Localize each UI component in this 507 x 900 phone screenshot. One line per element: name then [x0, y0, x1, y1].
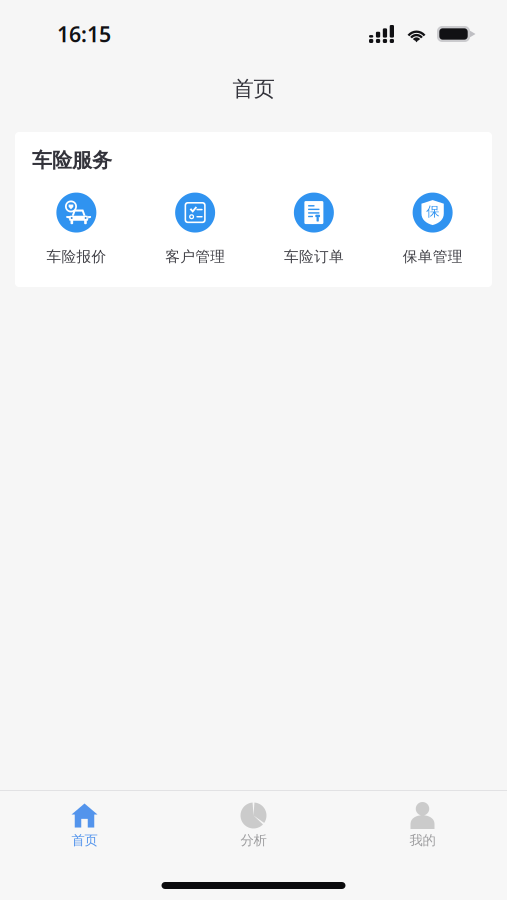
button[interactable]: 分析	[169, 802, 338, 848]
button[interactable]: 保单管理	[373, 193, 492, 266]
button[interactable]: 客户管理	[136, 193, 255, 266]
staticText: 分析	[240, 832, 266, 848]
button[interactable]: 首页	[0, 802, 169, 848]
staticText: 首页	[71, 832, 97, 848]
staticText: 保	[426, 203, 439, 220]
staticText: 车险服务	[32, 148, 112, 173]
staticText: 我的	[409, 832, 435, 848]
staticText: 车险报价	[46, 248, 106, 266]
staticText: 车险订单	[284, 248, 344, 266]
button[interactable]: 车险订单	[254, 193, 373, 266]
button[interactable]: 车险报价	[17, 193, 136, 266]
button[interactable]: 我的	[338, 802, 507, 848]
staticText: 保单管理	[403, 248, 463, 266]
staticText: 首页	[232, 76, 274, 102]
staticText: 客户管理	[165, 248, 225, 266]
staticText: 16:15	[57, 20, 111, 48]
